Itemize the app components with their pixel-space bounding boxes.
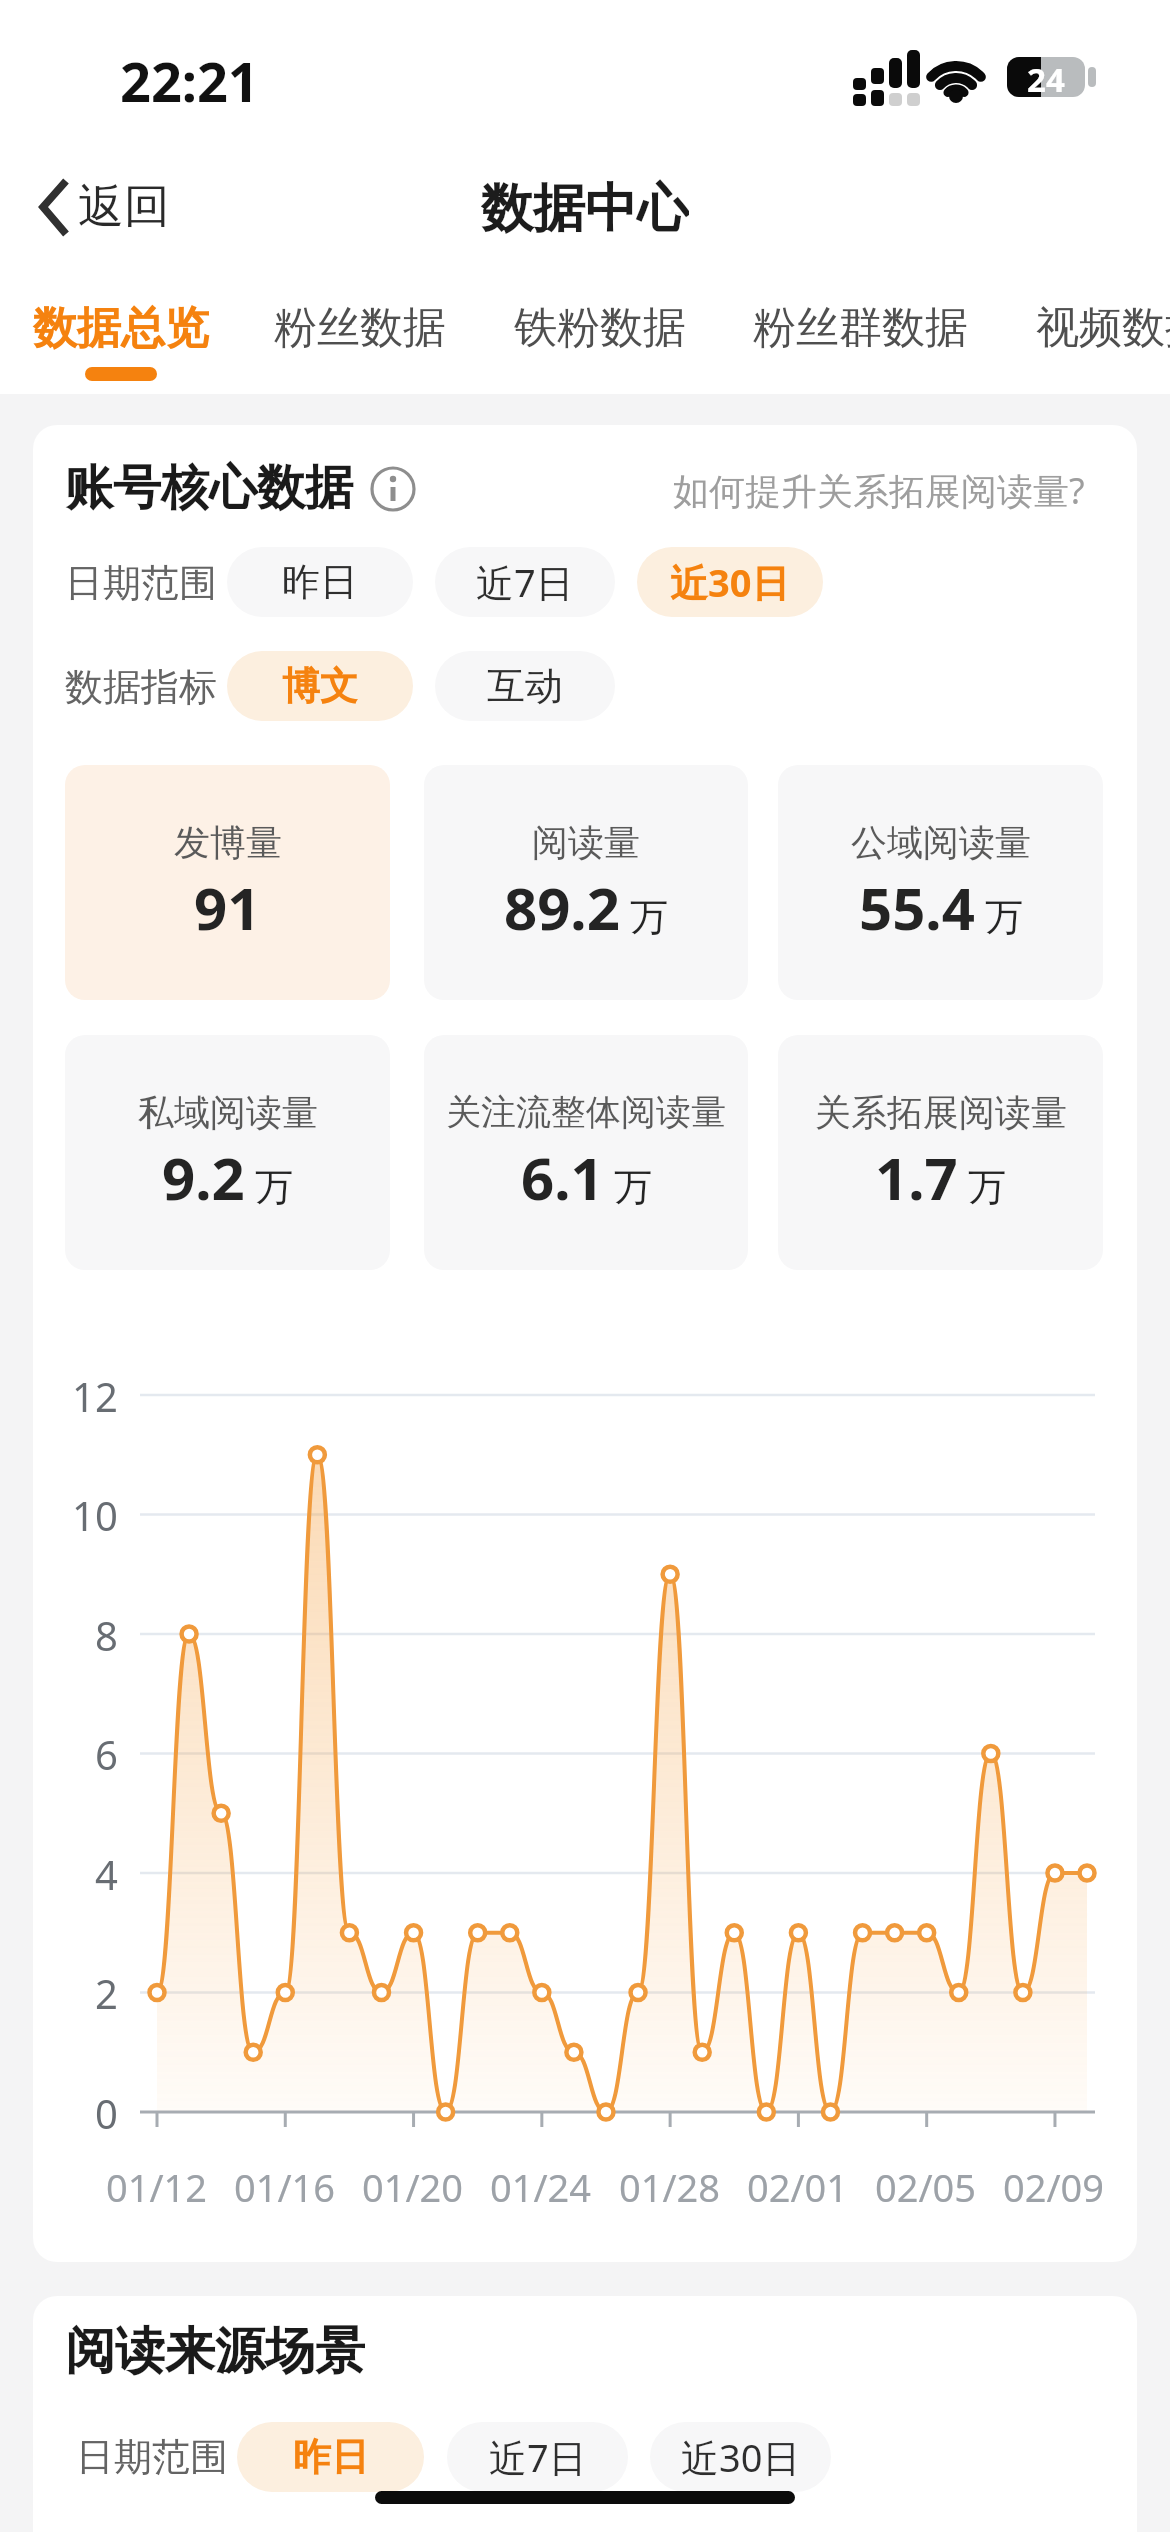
button[interactable]: 关注流整体阅读量 xyxy=(424,1035,748,1270)
staticText: 6 xyxy=(95,1727,118,1779)
button[interactable]: 粉丝数据 xyxy=(250,296,470,360)
staticText: 02/01 xyxy=(747,2161,849,2213)
button[interactable]: 关系拓展阅读量 xyxy=(778,1035,1103,1270)
staticText: 02/09 xyxy=(1003,2161,1105,2213)
button[interactable]: 近7日 xyxy=(435,547,615,617)
staticText: 近30日 xyxy=(670,556,790,608)
staticText: 关系拓展阅读量 xyxy=(815,1090,1067,1135)
staticText: 公域阅读量 xyxy=(851,820,1031,865)
button[interactable]: 粉丝群数据 xyxy=(735,296,985,360)
staticText: 博文 xyxy=(282,662,358,710)
button[interactable]: 博文 xyxy=(227,651,413,721)
staticText: 9.2 xyxy=(162,1138,245,1217)
staticText: 近7日 xyxy=(476,556,574,608)
staticText: 视频数据 xyxy=(1036,301,1170,355)
button[interactable]: 铁粉数据 xyxy=(490,296,710,360)
staticText: 粉丝群数据 xyxy=(753,301,968,355)
staticText: 阅读量 xyxy=(532,820,640,865)
staticText: 0 xyxy=(95,2086,118,2138)
button[interactable]: 视频数据 xyxy=(1036,296,1170,360)
staticText: 铁粉数据 xyxy=(514,301,686,355)
staticText: 日期范围 xyxy=(65,559,217,607)
staticText: 近7日 xyxy=(489,2431,587,2483)
button[interactable]: 近30日 xyxy=(637,547,823,617)
staticText: 01/20 xyxy=(362,2161,464,2213)
staticText: 12 xyxy=(72,1369,118,1421)
staticText: 01/12 xyxy=(106,2161,208,2213)
staticText: 阅读来源场景 xyxy=(65,2320,365,2382)
staticText: 1.7 xyxy=(875,1138,958,1217)
staticText: 91 xyxy=(194,868,261,947)
button[interactable]: 阅读量 xyxy=(424,765,748,1000)
button[interactable]: 近30日 xyxy=(650,2422,831,2492)
staticText: 万 xyxy=(958,1159,1006,1211)
staticText: 01/24 xyxy=(490,2161,592,2213)
button[interactable]: 私域阅读量 xyxy=(65,1035,390,1270)
button[interactable]: 公域阅读量 xyxy=(778,765,1103,1000)
staticText: 万 xyxy=(975,889,1023,941)
staticText: 如何提升关系拓展阅读量? xyxy=(673,466,1085,515)
staticText: 发博量 xyxy=(174,820,282,865)
staticText: 数据中心 xyxy=(481,176,689,236)
staticText: 近30日 xyxy=(681,2431,801,2483)
staticText: 2 xyxy=(95,1966,118,2018)
staticText: 日期范围 xyxy=(76,2433,228,2481)
staticText: 数据指标 xyxy=(65,663,217,711)
staticText: 互动 xyxy=(487,662,563,710)
staticText: 02/05 xyxy=(875,2161,977,2213)
staticText: 私域阅读量 xyxy=(138,1090,318,1135)
button[interactable]: 昨日 xyxy=(227,547,413,617)
button[interactable]: 数据总览 xyxy=(33,296,253,360)
staticText: 4 xyxy=(95,1847,118,1899)
staticText: 8 xyxy=(95,1608,118,1660)
staticText: 24 xyxy=(1027,57,1065,97)
button[interactable]: 返回 xyxy=(30,172,190,242)
staticText: 10 xyxy=(72,1488,118,1540)
staticText: 万 xyxy=(604,1159,652,1211)
button[interactable]: 如何提升关系拓展阅读量? xyxy=(665,464,1085,516)
staticText: 22:21 xyxy=(120,44,259,108)
button[interactable]: 发博量 xyxy=(65,765,390,1000)
staticText: 账号核心数据 xyxy=(65,458,353,518)
staticText: 粉丝数据 xyxy=(274,301,446,355)
staticText: 昨日 xyxy=(293,2433,369,2481)
staticText: 昨日 xyxy=(282,558,358,606)
staticText: 万 xyxy=(245,1159,293,1211)
staticText: 01/16 xyxy=(234,2161,336,2213)
staticText: 89.2 xyxy=(504,868,620,947)
staticText: 55.4 xyxy=(859,868,975,947)
staticText: 01/28 xyxy=(619,2161,721,2213)
staticText: 万 xyxy=(620,889,668,941)
button[interactable]: 互动 xyxy=(435,651,615,721)
button[interactable]: 昨日 xyxy=(237,2422,424,2492)
staticText: 返回 xyxy=(78,178,170,234)
button[interactable]: 近7日 xyxy=(447,2422,628,2492)
staticText: 关注流整体阅读量 xyxy=(446,1090,726,1134)
staticText: 数据总览 xyxy=(33,301,209,356)
staticText: 6.1 xyxy=(521,1138,604,1217)
